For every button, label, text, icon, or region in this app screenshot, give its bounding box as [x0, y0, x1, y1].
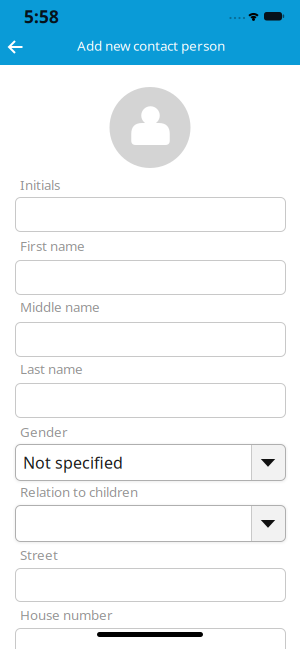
staticText: Add new contact person: [77, 37, 225, 54]
button[interactable]: Street: [15, 568, 286, 602]
staticText: Gender: [20, 423, 68, 441]
staticText: Street: [20, 546, 58, 564]
button[interactable]: Back: [0, 27, 40, 67]
button[interactable]: Relation to children: [15, 505, 286, 542]
button[interactable]: Middle name: [15, 322, 286, 357]
staticText: Relation to children: [20, 483, 138, 501]
button[interactable]: Add photo: [109, 87, 190, 168]
staticText: 5:58: [24, 5, 59, 28]
button[interactable]: Last name: [15, 383, 286, 418]
staticText: Initials: [20, 176, 60, 194]
staticText: House number: [20, 606, 113, 624]
button[interactable]: First name: [15, 260, 286, 295]
staticText: Not specified: [23, 452, 123, 473]
button[interactable]: House number: [15, 628, 286, 649]
staticText: Middle name: [20, 298, 100, 316]
staticText: First name: [20, 237, 85, 255]
button[interactable]: Gender: [15, 444, 286, 481]
staticText: Last name: [20, 360, 83, 378]
button[interactable]: Initials: [15, 197, 286, 232]
